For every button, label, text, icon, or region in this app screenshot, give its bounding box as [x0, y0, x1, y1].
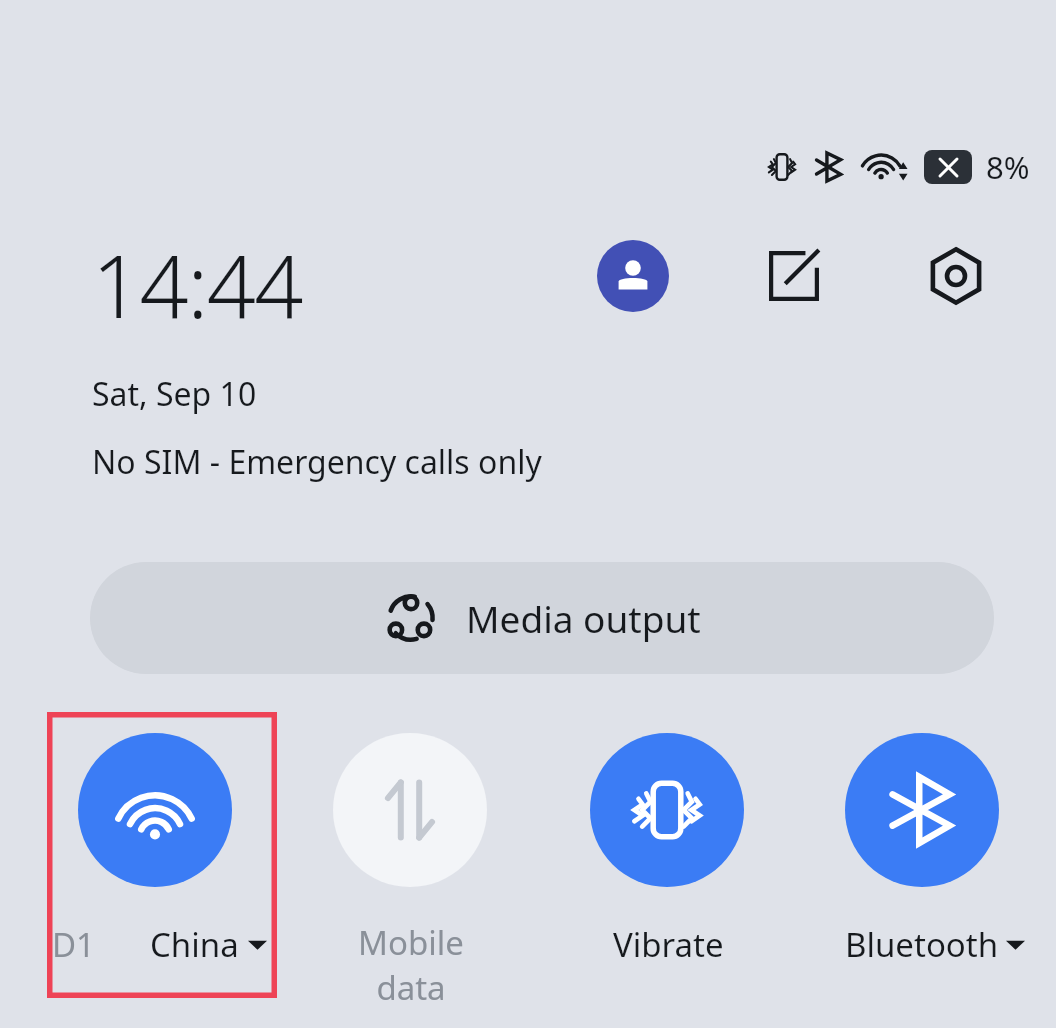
- staticText: Bluetooth: [845, 922, 999, 966]
- button[interactable]: Quick setting toggle: [845, 733, 999, 887]
- button[interactable]: Edit: [758, 240, 830, 312]
- button[interactable]: Media output: [90, 562, 994, 674]
- staticText: Mobile data: [328, 920, 494, 1010]
- button[interactable]: Quick setting toggle: [78, 733, 232, 887]
- staticText: Sat, Sep 10: [92, 372, 257, 416]
- button[interactable]: Settings: [920, 240, 992, 312]
- staticText: China: [150, 922, 239, 966]
- staticText: 14:44: [92, 226, 302, 343]
- button[interactable]: Quick setting toggle: [590, 733, 744, 887]
- staticText: 8%: [986, 146, 1030, 188]
- staticText: Media output: [466, 593, 701, 643]
- staticText: D1: [52, 922, 95, 966]
- button[interactable]: User profile: [597, 240, 669, 312]
- staticText: No SIM - Emergency calls only: [92, 440, 542, 484]
- button[interactable]: Quick setting toggle: [333, 733, 487, 887]
- staticText: Vibrate: [613, 922, 724, 966]
